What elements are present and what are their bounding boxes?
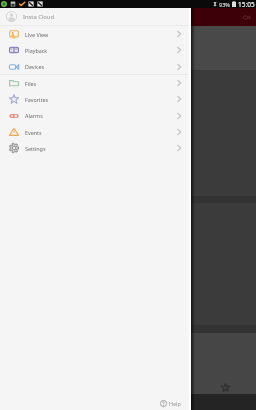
button[interactable]: Playback: [0, 42, 191, 58]
staticText: Alarms: [25, 112, 43, 119]
button[interactable]: Live View: [0, 26, 191, 42]
staticText: Devices: [25, 63, 45, 70]
button[interactable]: Settings: [0, 140, 191, 156]
staticText: Favorites: [25, 96, 49, 103]
staticText: Events: [25, 129, 42, 136]
staticText: 93%: [219, 1, 230, 8]
button[interactable]: Alarms: [0, 107, 191, 124]
button[interactable]: Favorites: [0, 91, 191, 107]
staticText: 15:05: [238, 0, 255, 8]
button[interactable]: Insta Cloud: [0, 8, 191, 25]
button[interactable]: Help: [160, 400, 181, 407]
button[interactable]: Live view: [241, 12, 252, 23]
staticText: Files: [25, 80, 37, 87]
button[interactable]: Favorite: [219, 381, 231, 393]
staticText: Settings: [25, 145, 46, 152]
staticText: Insta Cloud: [23, 13, 54, 21]
button[interactable]: Files: [0, 75, 191, 91]
staticText: Help: [169, 400, 181, 407]
staticText: Playback: [25, 47, 48, 54]
button[interactable]: Devices: [0, 58, 191, 75]
staticText: Live View: [25, 31, 49, 38]
button[interactable]: Events: [0, 124, 191, 140]
